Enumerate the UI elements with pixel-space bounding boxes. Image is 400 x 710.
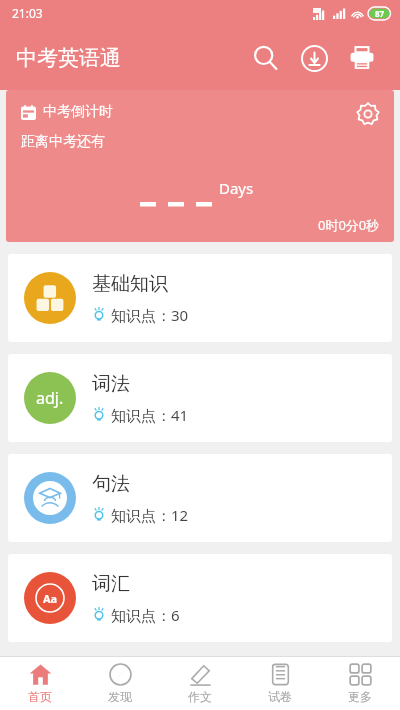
staticText: 知识点：30 bbox=[111, 305, 189, 325]
staticText: 知识点：12 bbox=[111, 505, 189, 525]
staticText: adj. bbox=[36, 387, 64, 409]
staticText: Days bbox=[219, 178, 254, 198]
button[interactable]: Aa bbox=[8, 554, 392, 642]
staticText: 21:03 bbox=[12, 5, 43, 21]
staticText: 距离中考还有 bbox=[21, 133, 105, 151]
staticText: 知识点：41 bbox=[111, 405, 189, 425]
staticText: 中考倒计时 bbox=[43, 103, 113, 121]
staticText: 句法 bbox=[92, 472, 130, 496]
button[interactable]: 基础知识 bbox=[8, 254, 392, 342]
staticText: 发现 bbox=[108, 689, 132, 704]
button[interactable]: adj. bbox=[8, 354, 392, 442]
button[interactable]: 首页 bbox=[0, 657, 80, 710]
button[interactable]: 试卷 bbox=[240, 657, 320, 710]
staticText: 基础知识 bbox=[92, 272, 168, 296]
button[interactable]: Settings bbox=[350, 96, 386, 132]
staticText: 作文 bbox=[188, 689, 212, 704]
staticText: 首页 bbox=[28, 689, 52, 704]
button[interactable]: Download bbox=[290, 34, 338, 82]
staticText: 87 bbox=[375, 8, 385, 19]
staticText: 试卷 bbox=[268, 689, 292, 704]
staticText: 词汇 bbox=[92, 572, 130, 596]
staticText: 中考英语通 bbox=[16, 45, 121, 71]
button[interactable]: Search bbox=[242, 34, 290, 82]
button[interactable]: 更多 bbox=[320, 657, 400, 710]
staticText: Aa bbox=[43, 591, 58, 606]
button[interactable]: Print bbox=[338, 34, 386, 82]
staticText: 知识点：6 bbox=[111, 605, 180, 625]
staticText: 词法 bbox=[92, 372, 130, 396]
button[interactable]: 中考倒计时 bbox=[6, 90, 394, 242]
button[interactable]: 发现 bbox=[80, 657, 160, 710]
staticText: 0时0分0秒 bbox=[318, 216, 380, 234]
button[interactable]: 作文 bbox=[160, 657, 240, 710]
staticText: 更多 bbox=[348, 689, 372, 704]
button[interactable]: 句法 bbox=[8, 454, 392, 542]
